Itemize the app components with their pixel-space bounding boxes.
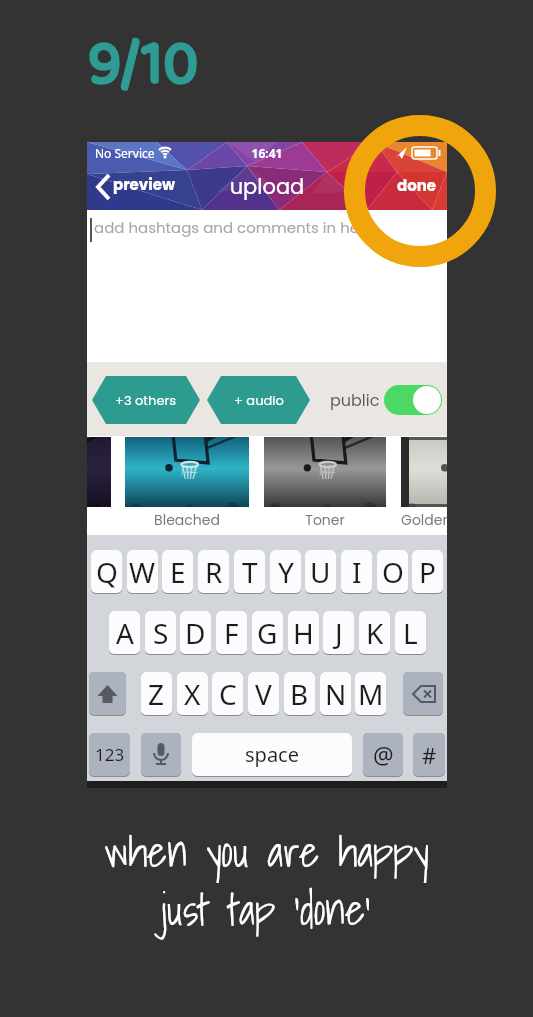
staticText: J <box>335 614 343 652</box>
button[interactable]: U <box>305 550 336 593</box>
staticText: V <box>255 675 272 713</box>
staticText: public <box>330 389 380 411</box>
button[interactable]: preview <box>113 174 175 195</box>
button[interactable]: G <box>252 611 283 654</box>
staticText: +3 others <box>115 391 177 409</box>
staticText: Golden <box>401 510 447 530</box>
button[interactable]: O <box>377 550 408 593</box>
button[interactable]: X <box>177 672 208 715</box>
button[interactable]: N <box>320 672 351 715</box>
staticText: just tap 'done' <box>0 876 533 943</box>
staticText: No Service <box>95 145 155 161</box>
staticText: X <box>184 675 201 713</box>
staticText: G <box>257 614 278 652</box>
button[interactable]: K <box>359 611 390 654</box>
button[interactable]: B <box>284 672 315 715</box>
button[interactable]: @ <box>363 733 403 776</box>
button[interactable]: 123 <box>89 733 130 776</box>
button[interactable]: T <box>234 550 265 593</box>
staticText: L <box>403 614 418 652</box>
button[interactable]: J <box>323 611 354 654</box>
staticText: upload <box>87 172 447 201</box>
staticText: Y <box>278 553 294 591</box>
button[interactable] <box>141 733 181 776</box>
staticText: I <box>352 553 362 591</box>
staticText: when you are happy <box>0 818 533 885</box>
button[interactable]: Z <box>141 672 172 715</box>
button[interactable]: Q <box>91 550 122 593</box>
staticText: N <box>325 675 347 713</box>
button[interactable]: E <box>162 550 193 593</box>
button[interactable]: P <box>412 550 443 593</box>
staticText: space <box>245 741 299 768</box>
staticText: preview <box>113 174 175 195</box>
staticText: @ <box>373 739 394 770</box>
staticText: 123 <box>95 743 125 766</box>
staticText: add hashtags and comments in here <box>94 217 374 238</box>
button[interactable]: W <box>127 550 158 593</box>
staticText: 16:41 <box>87 145 447 161</box>
staticText: Toner <box>264 510 386 530</box>
button[interactable]: F <box>216 611 247 654</box>
button[interactable]: space <box>192 733 352 776</box>
button[interactable]: H <box>288 611 319 654</box>
staticText: Bleached <box>125 510 249 530</box>
staticText: K <box>366 614 384 652</box>
button[interactable]: L <box>395 611 426 654</box>
button[interactable] <box>89 672 126 715</box>
button[interactable]: done <box>389 168 437 202</box>
staticText: C <box>219 675 237 713</box>
button[interactable]: D <box>180 611 211 654</box>
button[interactable]: M <box>355 672 386 715</box>
staticText: E <box>170 553 186 591</box>
button[interactable]: +3 others <box>92 376 200 424</box>
staticText: 9/10 <box>88 17 199 113</box>
staticText: B <box>290 675 309 713</box>
button[interactable]: + audio <box>207 376 310 424</box>
staticText: done <box>397 175 437 196</box>
staticText: S <box>153 614 169 652</box>
staticText: T <box>242 553 258 591</box>
staticText: M <box>358 675 384 713</box>
button[interactable] <box>384 385 442 415</box>
button[interactable]: # <box>413 733 445 776</box>
staticText: 9/10 <box>88 17 199 113</box>
staticText: Q <box>96 553 118 591</box>
staticText: P <box>419 553 436 591</box>
button[interactable]: Y <box>270 550 301 593</box>
button[interactable]: R <box>198 550 229 593</box>
button[interactable]: S <box>145 611 176 654</box>
button[interactable]: V <box>248 672 279 715</box>
staticText: F <box>224 614 239 652</box>
staticText: W <box>129 553 156 591</box>
staticText: D <box>185 614 206 652</box>
staticText: + audio <box>234 391 284 409</box>
button[interactable]: C <box>212 672 243 715</box>
staticText: # <box>422 740 437 770</box>
button[interactable]: A <box>109 611 140 654</box>
button[interactable]: I <box>341 550 372 593</box>
staticText: R <box>205 553 223 591</box>
staticText: H <box>293 614 314 652</box>
staticText: A <box>116 614 134 652</box>
staticText: O <box>382 553 404 591</box>
staticText: U <box>310 553 331 591</box>
button[interactable] <box>403 672 443 715</box>
staticText: Z <box>148 675 165 713</box>
